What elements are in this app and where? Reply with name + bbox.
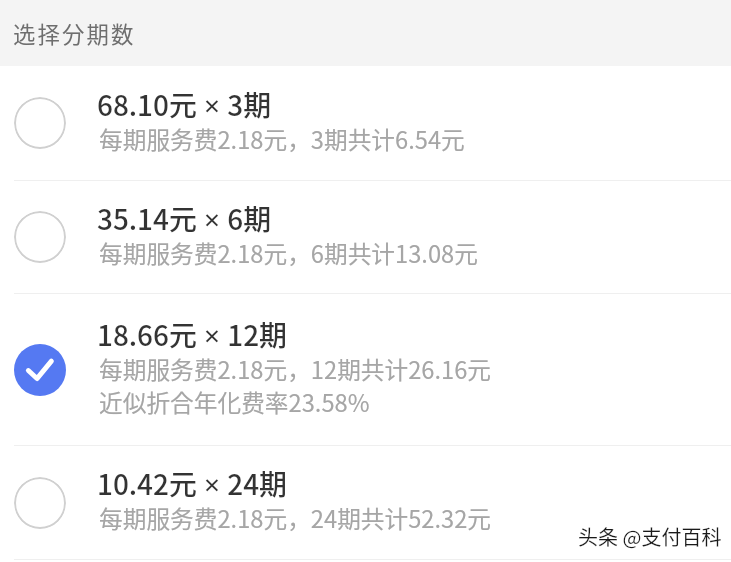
staticText: 每期服务费2.18元，24期共计52.32元 xyxy=(99,501,492,535)
staticText: 头条 @支付百科 xyxy=(578,522,722,551)
button[interactable]: Select installment plan xyxy=(0,181,731,293)
other: Select installment plan xyxy=(14,211,66,263)
staticText: 每期服务费2.18元，12期共计26.16元 xyxy=(99,352,492,386)
button[interactable]: Select installment plan xyxy=(0,66,731,180)
staticText: 18.66元 × 12期 xyxy=(97,314,287,355)
staticText: 每期服务费2.18元，3期共计6.54元 xyxy=(99,122,465,156)
staticText: 头条 @支付百科 xyxy=(577,521,721,550)
staticText: 每期服务费2.18元，6期共计13.08元 xyxy=(99,236,478,270)
staticText: 头条 @支付百科 xyxy=(578,521,722,550)
staticText: 头条 @支付百科 xyxy=(578,523,722,552)
staticText: 选择分期数 xyxy=(13,17,136,49)
other: Selected installment plan xyxy=(14,344,66,396)
staticText: 头条 @支付百科 xyxy=(577,522,721,551)
staticText: 头条 @支付百科 xyxy=(579,523,723,552)
staticText: 35.14元 × 6期 xyxy=(97,198,272,239)
staticText: 头条 @支付百科 xyxy=(579,521,723,550)
other: Select installment plan xyxy=(14,97,66,149)
staticText: 10.42元 × 24期 xyxy=(97,463,287,504)
button[interactable]: Selected installment plan xyxy=(0,294,731,445)
staticText: 头条 @支付百科 xyxy=(579,522,723,551)
other: Select installment plan xyxy=(14,477,66,529)
button[interactable]: Select installment plan xyxy=(0,446,731,559)
staticText: 68.10元 × 3期 xyxy=(97,84,272,125)
staticText: 近似折合年化费率23.58% xyxy=(99,385,370,419)
staticText: 头条 @支付百科 xyxy=(577,523,721,552)
